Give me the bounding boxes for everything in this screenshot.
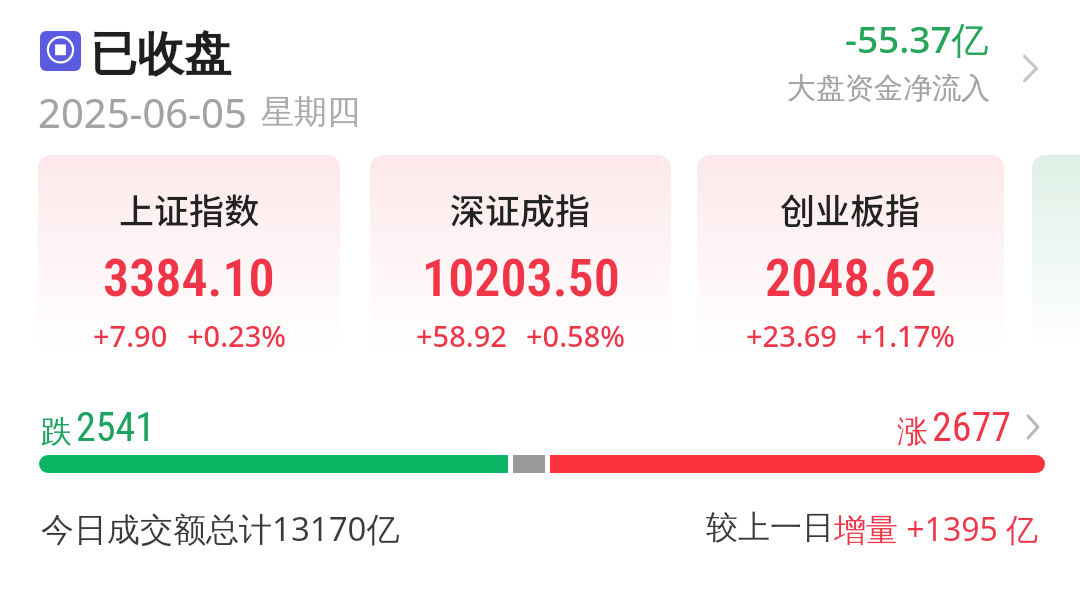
button[interactable]: [1032, 155, 1080, 383]
staticText: 2048.62: [765, 248, 937, 309]
staticText: 3384.10: [103, 248, 275, 309]
staticText: 涨: [897, 412, 928, 451]
staticText: 增量 +1395 亿: [834, 507, 1039, 551]
button[interactable]: 创业板指: [697, 155, 1004, 383]
staticText: 大盘资金净流入: [787, 70, 990, 107]
staticText: 2025-06-05: [38, 85, 247, 139]
button[interactable]: -55.37亿: [787, 13, 1039, 107]
staticText: +1.17%: [856, 316, 955, 355]
staticText: +0.23%: [187, 316, 286, 355]
staticText: +58.92: [416, 316, 507, 355]
button[interactable]: Advance decline ratio: [39, 455, 1045, 473]
staticText: 上证指数: [119, 183, 260, 234]
staticText: -55.37亿: [845, 13, 989, 64]
staticText: 已收盘: [90, 25, 231, 84]
staticText: 10203.50: [422, 248, 620, 309]
staticText: +7.90: [93, 316, 168, 355]
staticText: 深证成指: [450, 183, 591, 234]
staticText: 较上一日: [706, 507, 834, 547]
staticText: 星期四: [261, 91, 360, 133]
other: Market status: [40, 31, 81, 71]
staticText: 创业板指: [780, 183, 921, 234]
button[interactable]: 上证指数: [38, 155, 340, 383]
staticText: 2541: [76, 404, 155, 451]
staticText: 跌: [41, 412, 72, 451]
staticText: +23.69: [746, 316, 837, 355]
button[interactable]: 涨: [897, 404, 1040, 451]
staticText: 今日成交额总计13170亿: [41, 506, 400, 551]
staticText: +0.58%: [526, 316, 625, 355]
button[interactable]: 跌: [41, 404, 155, 451]
button[interactable]: 深证成指: [370, 155, 671, 383]
staticText: 2677: [932, 404, 1011, 451]
